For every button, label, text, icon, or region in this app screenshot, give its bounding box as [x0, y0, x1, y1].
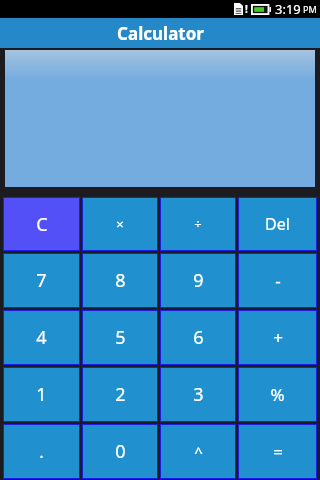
button[interactable]: 8: [83, 254, 157, 307]
button[interactable]: Del: [239, 198, 316, 250]
staticText: 8: [115, 268, 126, 293]
button[interactable]: 1: [4, 368, 79, 421]
staticText: 5: [115, 325, 126, 350]
staticText: =: [273, 440, 283, 463]
staticText: !: [245, 2, 248, 16]
staticText: ×: [116, 215, 124, 233]
staticText: -: [275, 269, 281, 292]
staticText: 4: [36, 325, 47, 350]
staticText: 0: [115, 439, 126, 464]
staticText: C: [36, 212, 48, 237]
staticText: 3:19: [275, 0, 301, 18]
staticText: ÷: [194, 215, 202, 233]
button[interactable]: =: [239, 425, 316, 478]
staticText: 7: [36, 268, 47, 293]
button[interactable]: 4: [4, 311, 79, 364]
button[interactable]: 2: [83, 368, 157, 421]
button[interactable]: -: [239, 254, 316, 307]
button[interactable]: +: [239, 311, 316, 364]
staticText: Del: [265, 213, 290, 235]
staticText: 1: [36, 382, 47, 407]
staticText: 3: [193, 382, 204, 407]
button[interactable]: 5: [83, 311, 157, 364]
button[interactable]: ×: [83, 198, 157, 250]
staticText: 9: [193, 268, 204, 293]
staticText: PM: [303, 3, 317, 15]
button[interactable]: 0: [83, 425, 157, 478]
staticText: 6: [193, 325, 204, 350]
button[interactable]: [5, 50, 315, 187]
staticText: %: [270, 383, 285, 406]
button[interactable]: %: [239, 368, 316, 421]
button[interactable]: 3: [161, 368, 235, 421]
staticText: .: [39, 440, 44, 463]
staticText: +: [273, 326, 283, 349]
button[interactable]: 9: [161, 254, 235, 307]
staticText: 2: [115, 382, 126, 407]
button[interactable]: .: [4, 425, 79, 478]
button[interactable]: 7: [4, 254, 79, 307]
button[interactable]: ÷: [161, 198, 235, 250]
staticText: ^: [194, 442, 203, 462]
button[interactable]: ^: [161, 425, 235, 478]
button[interactable]: 6: [161, 311, 235, 364]
staticText: Calculator: [117, 22, 204, 45]
button[interactable]: C: [4, 198, 79, 250]
